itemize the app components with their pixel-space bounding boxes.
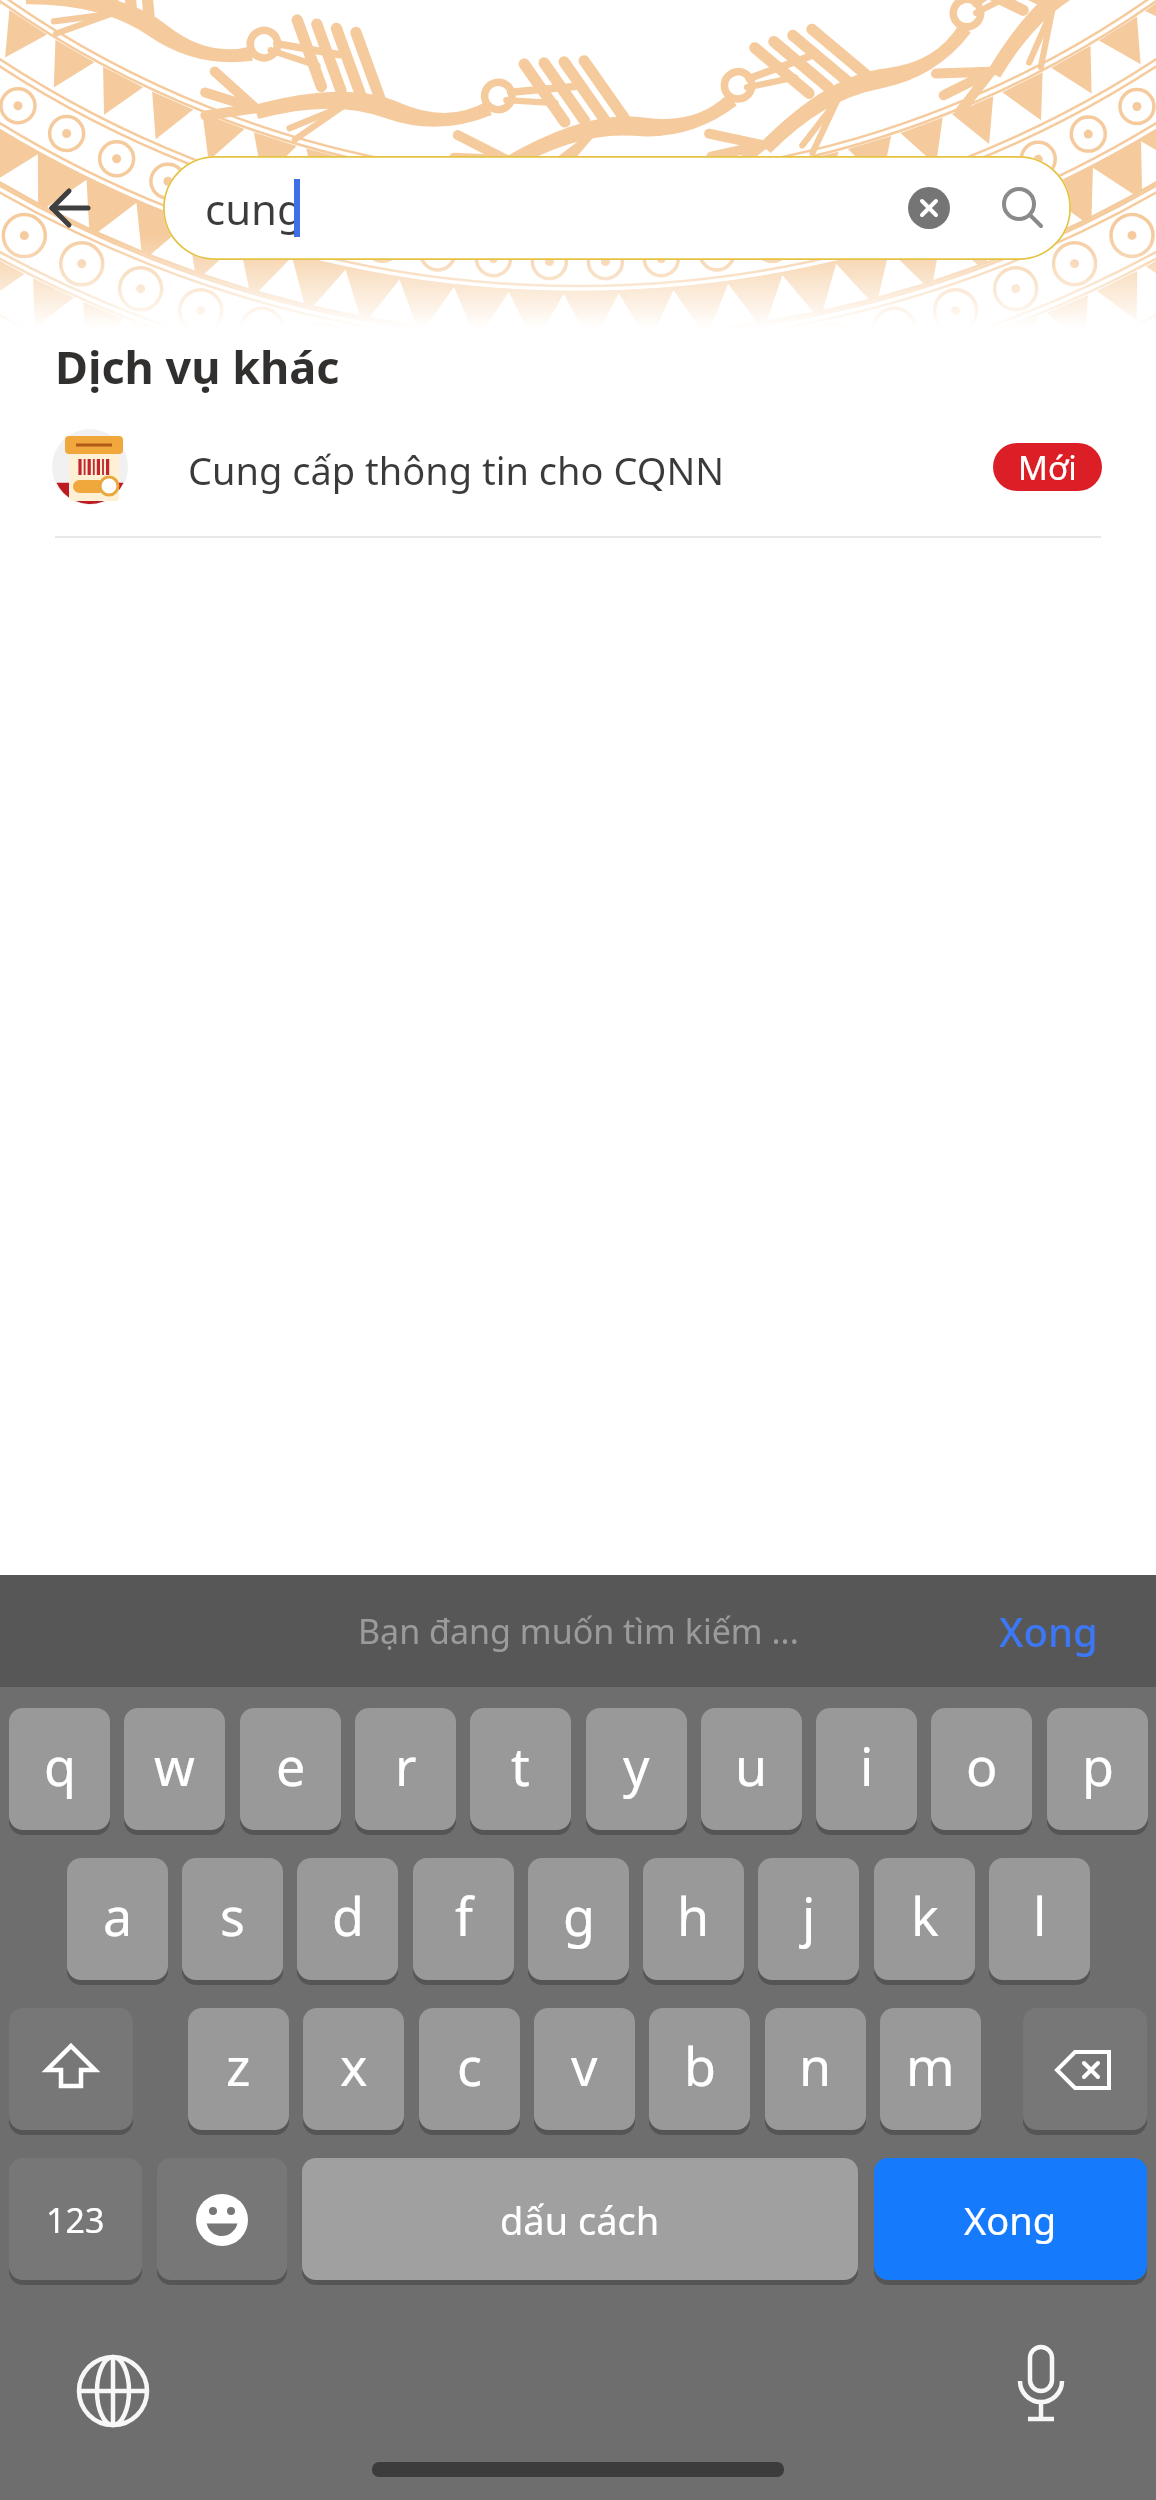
staticText: x (340, 2030, 368, 2101)
staticText: p (1082, 1730, 1114, 1801)
staticText: j (802, 1880, 816, 1951)
staticText: l (1033, 1880, 1047, 1951)
staticText: y (623, 1730, 650, 1801)
staticText: m (906, 2030, 955, 2101)
staticText: i (860, 1730, 874, 1801)
staticText: Xong (999, 1604, 1098, 1658)
staticText: Xong (964, 2194, 1057, 2246)
staticText: Mới (1018, 445, 1077, 490)
staticText: b (684, 2030, 716, 2101)
staticText: c (457, 2030, 482, 2101)
staticText: k (911, 1880, 939, 1951)
staticText: cung (205, 180, 303, 237)
staticText: u (735, 1730, 768, 1801)
staticText: Bạn đang muốn tìm kiếm ... (358, 1608, 799, 1654)
staticText: a (103, 1880, 133, 1951)
staticText: Dịch vụ khác (55, 336, 340, 397)
staticText: h (677, 1880, 710, 1951)
staticText: t (511, 1730, 530, 1801)
staticText: s (220, 1880, 245, 1951)
staticText: w (154, 1730, 195, 1801)
staticText: g (563, 1880, 595, 1951)
staticText: dấu cách (500, 2194, 660, 2246)
staticText: o (966, 1730, 998, 1801)
staticText: q (44, 1730, 76, 1801)
staticText: e (276, 1730, 306, 1801)
staticText: 123 (46, 2197, 105, 2243)
staticText: r (395, 1730, 417, 1801)
staticText: f (455, 1880, 473, 1951)
staticText: n (799, 2030, 832, 2101)
staticText: v (571, 2030, 598, 2101)
staticText: Cung cấp thông tin cho CQNN (188, 444, 725, 496)
staticText: d (332, 1880, 364, 1951)
staticText: z (226, 2030, 251, 2101)
